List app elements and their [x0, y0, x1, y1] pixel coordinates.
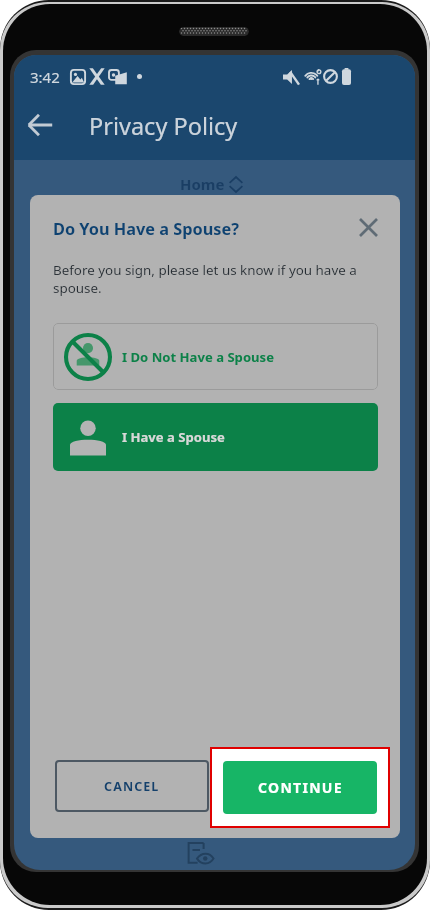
- button[interactable]: I Do Not Have a Spouse: [53, 323, 378, 390]
- staticText: Home: [180, 174, 225, 194]
- staticText: I Have a Spouse: [122, 428, 225, 446]
- button[interactable]: Home: [180, 174, 244, 194]
- button[interactable]: CANCEL: [55, 760, 209, 812]
- button[interactable]: Back: [16, 101, 64, 149]
- button[interactable]: Close: [354, 213, 383, 242]
- staticText: Do You Have a Spouse?: [53, 218, 239, 240]
- button[interactable]: CONTINUE: [223, 761, 377, 814]
- staticText: Privacy Policy: [89, 110, 238, 142]
- staticText: Before you sign, please let us know if y…: [53, 261, 368, 297]
- staticText: I Do Not Have a Spouse: [122, 348, 274, 366]
- staticText: CANCEL: [104, 778, 160, 795]
- staticText: 3:42: [30, 67, 60, 87]
- button[interactable]: I Have a Spouse: [53, 403, 378, 471]
- staticText: CONTINUE: [258, 778, 343, 797]
